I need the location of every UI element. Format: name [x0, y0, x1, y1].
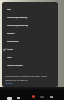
button[interactable]: Chinese (Simplified) — [2, 13, 58, 21]
button[interactable]: Audio translate — [2, 61, 58, 69]
staticText: Malay — [7, 48, 14, 51]
staticText: This setting only applies to this video.… — [5, 75, 49, 81]
staticText: Settings — [5, 82, 13, 85]
button[interactable]: Home — [7, 97, 12, 100]
staticText: Thai — [7, 56, 12, 59]
button[interactable]: Thai — [2, 53, 58, 61]
staticText: Indonesian — [7, 40, 19, 43]
button[interactable]: Malay — [2, 45, 58, 53]
staticText: Chinese (Simplified) — [7, 16, 28, 19]
button[interactable]: Record — [32, 95, 35, 98]
button[interactable]: Overview — [40, 96, 44, 98]
button[interactable]: Settings — [5, 82, 13, 85]
button[interactable]: Edit — [2, 5, 58, 13]
staticText: Audio translate — [7, 64, 23, 67]
button[interactable]: Recents — [17, 97, 20, 99]
button[interactable]: English — [2, 29, 58, 37]
staticText: Edit — [7, 8, 11, 11]
staticText: English — [7, 32, 15, 35]
staticText: Chinese (Traditional) — [7, 24, 28, 27]
button[interactable]: Chinese (Traditional) — [2, 21, 58, 29]
button[interactable]: Back — [50, 96, 53, 98]
button[interactable]: Indonesian — [2, 37, 58, 45]
